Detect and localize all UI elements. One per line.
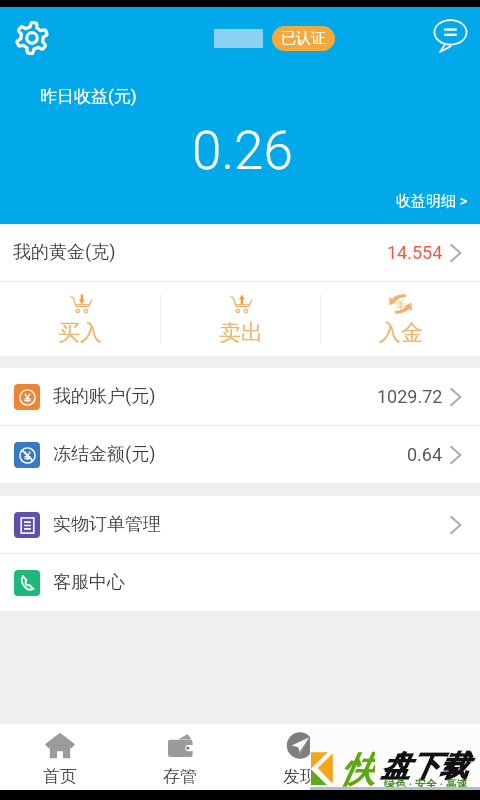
staticText: 入金 xyxy=(379,319,423,347)
button[interactable]: Messages xyxy=(429,14,471,56)
button[interactable]: 冻结金额(元) xyxy=(0,426,480,483)
staticText: 发现 xyxy=(283,766,317,787)
staticText: 0.64 xyxy=(407,444,443,465)
staticText: 实物订单管理 xyxy=(53,513,161,536)
staticText: 卖出 xyxy=(219,319,263,347)
staticText: 客服中心 xyxy=(53,571,125,594)
button[interactable]: 发现 xyxy=(240,724,360,790)
staticText: 1029.72 xyxy=(377,386,443,407)
staticText: 已认证 xyxy=(281,29,326,48)
button[interactable]: 买入 xyxy=(0,282,160,356)
button[interactable]: 客服中心 xyxy=(0,554,480,611)
button[interactable]: 实物订单管理 xyxy=(0,496,480,553)
button[interactable]: 我的账户(元) xyxy=(0,368,480,425)
button[interactable]: 收益明细 > xyxy=(396,192,468,211)
button[interactable]: 存管 xyxy=(120,724,240,790)
staticText: 首页 xyxy=(43,766,77,787)
button[interactable]: 我的 xyxy=(360,724,480,790)
staticText: 收益明细 > xyxy=(396,192,468,211)
staticText: 快 xyxy=(340,748,375,790)
button[interactable]: Settings xyxy=(10,16,54,60)
staticText: 买入 xyxy=(58,319,102,347)
staticText: 我的账户(元) xyxy=(53,385,156,408)
staticText: 我的 xyxy=(403,766,437,787)
staticText: 0.26 xyxy=(192,120,293,182)
button[interactable]: 我的黄金(克) xyxy=(0,224,480,281)
button[interactable]: 已认证 xyxy=(272,26,335,51)
staticText: 14.554 xyxy=(387,242,443,263)
staticText: 冻结金额(元) xyxy=(53,443,156,466)
staticText: 存管 xyxy=(163,766,197,787)
button[interactable]: 卖出 xyxy=(161,282,320,356)
staticText: 昨日收益(元) xyxy=(40,86,137,107)
staticText: 盘下载 xyxy=(381,748,468,785)
button[interactable]: 入金 xyxy=(321,282,480,356)
button[interactable]: 首页 xyxy=(0,724,120,790)
staticText: 绿色 · 安全 · 高速 xyxy=(384,777,468,790)
staticText: 我的黄金(克) xyxy=(13,241,116,264)
